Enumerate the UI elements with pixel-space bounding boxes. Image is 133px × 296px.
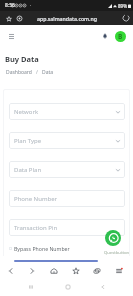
button[interactable]: Menu [113, 265, 125, 277]
button[interactable]: Bookmark [4, 14, 13, 23]
button[interactable]: Reload [122, 14, 130, 22]
staticText: Network [14, 108, 39, 116]
button[interactable]: Forward [26, 265, 38, 277]
button[interactable]: Home [62, 281, 74, 293]
staticText: Dashboard [6, 69, 32, 76]
button[interactable]: Network [9, 103, 125, 120]
staticText: 8:56 [5, 2, 15, 9]
button[interactable]: Bookmark [70, 265, 82, 277]
staticText: Transaction Pin [14, 224, 58, 232]
staticText: Data [42, 69, 54, 76]
button[interactable]: Transaction Pin [9, 219, 125, 236]
button[interactable]: B [115, 31, 126, 42]
button[interactable]: Plan Type [9, 132, 125, 149]
staticText: Buy Data [5, 54, 39, 64]
staticText: Data Plan [14, 166, 42, 174]
staticText: app.salmandata.com.ng [37, 15, 97, 22]
staticText: B [118, 32, 123, 41]
staticText: Plan Type [14, 137, 42, 145]
button[interactable]: Tabs [91, 265, 103, 277]
staticText: 89% [118, 3, 127, 9]
button[interactable]: Menu [7, 32, 16, 40]
button[interactable]: Back [5, 265, 17, 277]
button[interactable]: Bypass Phone Number [9, 244, 70, 253]
button[interactable]: Home [48, 265, 60, 277]
button[interactable]: Chat on WhatsApp [105, 230, 121, 246]
staticText: Questbutton [104, 250, 130, 256]
button[interactable]: Notifications [100, 31, 109, 40]
staticText: / [32, 69, 42, 76]
staticText: Bypass Phone Number [14, 245, 70, 252]
button[interactable]: Phone Number [9, 190, 125, 207]
staticText: Phone Number [14, 195, 58, 203]
button[interactable]: Data Plan [9, 161, 125, 178]
button[interactable]: Back [97, 281, 109, 293]
button[interactable]: Account [15, 14, 24, 23]
button[interactable]: Recents [25, 281, 37, 293]
